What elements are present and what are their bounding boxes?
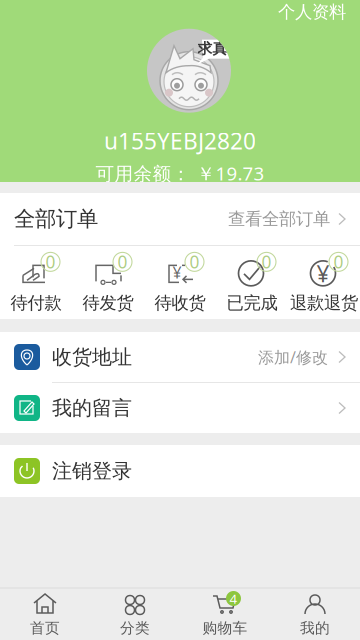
staticText: 个人资料	[278, 1, 346, 23]
staticText: ¥	[316, 258, 329, 288]
button[interactable]: 0	[72, 251, 144, 314]
staticText: 待发货	[82, 292, 133, 314]
button[interactable]: 0	[216, 251, 288, 314]
staticText: 0	[45, 250, 55, 273]
staticText: 全部订单	[14, 206, 98, 232]
staticText: 已完成	[226, 292, 277, 314]
button[interactable]: 收货地址	[0, 332, 360, 382]
staticText: 我的留言	[52, 396, 132, 420]
button[interactable]: 注销登录	[0, 445, 360, 497]
staticText: ¥	[172, 262, 181, 283]
staticText: 购物车	[202, 619, 247, 637]
staticText: 首页	[30, 619, 60, 637]
staticText: 待收货	[154, 292, 205, 314]
staticText: 0	[189, 250, 199, 273]
button[interactable]: 分类	[90, 588, 180, 640]
button[interactable]: 0	[0, 251, 72, 314]
staticText: 注销登录	[52, 459, 132, 483]
button[interactable]: 我的留言	[0, 383, 360, 433]
button[interactable]: ¥	[288, 251, 360, 314]
staticText: 0	[261, 250, 271, 273]
staticText: 0	[117, 250, 127, 273]
button[interactable]: 首页	[0, 588, 90, 640]
staticText: 添加/修改	[258, 346, 328, 368]
staticText: 收货地址	[52, 345, 132, 369]
staticText: 查看全部订单	[228, 208, 330, 230]
button[interactable]: 我的	[270, 588, 360, 640]
button[interactable]: 个人资料	[264, 0, 360, 28]
staticText: 待付款	[10, 292, 61, 314]
button[interactable]: 4	[180, 588, 270, 640]
staticText: 我的	[300, 619, 330, 637]
staticText: 求真伪	[197, 40, 242, 58]
button[interactable]: 全部订单	[0, 193, 360, 245]
staticText: u155YEBJ2820	[104, 126, 256, 156]
staticText: 0	[333, 250, 343, 273]
staticText: 退款退货	[290, 292, 358, 314]
staticText: 分类	[120, 619, 150, 637]
button[interactable]: ¥	[144, 251, 216, 314]
staticText: 可用余额： ￥19.73	[95, 161, 264, 186]
staticText: 4	[229, 590, 237, 607]
